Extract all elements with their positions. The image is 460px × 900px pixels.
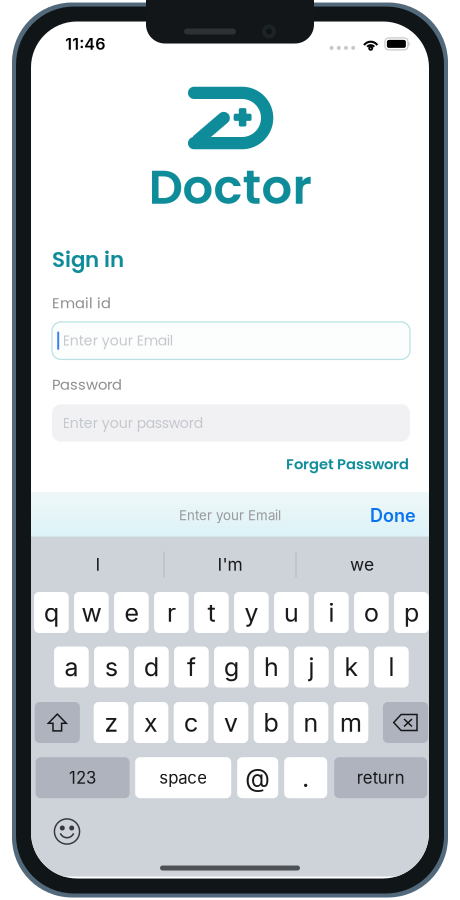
staticText: b <box>263 707 278 738</box>
button[interactable]: r <box>154 592 189 633</box>
button[interactable]: 123 <box>36 757 130 798</box>
button[interactable]: we <box>296 543 427 585</box>
button[interactable]: space <box>135 757 231 798</box>
staticText: Done <box>370 505 416 526</box>
staticText: 11:46 <box>65 34 105 54</box>
button[interactable]: s <box>94 646 129 687</box>
button[interactable]: Shift <box>35 702 80 743</box>
staticText: n <box>303 707 318 738</box>
staticText: I <box>95 554 100 575</box>
button[interactable]: u <box>274 592 309 633</box>
staticText: l <box>388 652 394 682</box>
button[interactable]: l <box>374 646 409 687</box>
button[interactable]: k <box>334 646 369 687</box>
staticText: y <box>244 597 258 628</box>
staticText: q <box>44 597 59 628</box>
staticText: space <box>159 768 207 788</box>
staticText: a <box>64 652 78 682</box>
staticText: d <box>144 652 159 682</box>
button[interactable]: Delete <box>383 702 428 743</box>
staticText: Email id <box>52 293 111 313</box>
button[interactable]: . <box>284 757 327 798</box>
staticText: we <box>350 554 374 575</box>
staticText: i <box>328 597 334 628</box>
button[interactable]: g <box>214 646 249 687</box>
button[interactable]: x <box>134 702 168 743</box>
button[interactable]: e <box>114 592 149 633</box>
staticText: h <box>264 652 279 682</box>
button[interactable]: z <box>94 702 128 743</box>
button[interactable]: j <box>294 646 329 687</box>
staticText: z <box>104 707 117 738</box>
button[interactable]: v <box>214 702 248 743</box>
staticText: j <box>308 652 314 682</box>
staticText: v <box>224 707 238 738</box>
button[interactable]: return <box>334 757 427 798</box>
staticText: return <box>357 768 405 788</box>
button[interactable]: w <box>74 592 109 633</box>
button[interactable]: p <box>394 592 429 633</box>
staticText: 123 <box>69 768 96 788</box>
button[interactable]: I'm <box>164 543 295 585</box>
staticText: Doctor <box>148 153 311 221</box>
staticText: r <box>167 597 176 628</box>
button[interactable]: f <box>174 646 209 687</box>
button[interactable]: y <box>234 592 269 633</box>
staticText: Enter your password <box>63 413 203 433</box>
staticText: f <box>187 652 196 682</box>
button[interactable]: h <box>254 646 289 687</box>
staticText: u <box>284 597 299 628</box>
staticText: m <box>340 707 362 738</box>
button[interactable]: o <box>354 592 389 633</box>
staticText: Enter your Email <box>179 507 281 523</box>
staticText: . <box>302 762 309 793</box>
staticText: x <box>144 707 158 738</box>
button[interactable]: t <box>194 592 229 633</box>
button[interactable]: b <box>254 702 288 743</box>
staticText: Sign in <box>52 245 124 274</box>
button[interactable]: I <box>32 543 163 585</box>
staticText: t <box>207 597 215 628</box>
staticText: c <box>184 707 198 738</box>
staticText: g <box>224 652 239 682</box>
button[interactable]: m <box>334 702 368 743</box>
staticText: e <box>124 597 138 628</box>
button[interactable]: i <box>314 592 349 633</box>
staticText: @ <box>245 762 270 793</box>
button[interactable]: q <box>34 592 69 633</box>
staticText: k <box>344 652 358 682</box>
button[interactable]: Forget Password <box>286 454 409 474</box>
staticText: o <box>364 597 379 628</box>
staticText: w <box>81 597 101 628</box>
button[interactable]: d <box>134 646 169 687</box>
staticText: I'm <box>217 554 242 575</box>
button[interactable]: @ <box>237 757 278 798</box>
button[interactable]: Done <box>370 505 416 526</box>
button[interactable]: c <box>174 702 208 743</box>
button[interactable]: a <box>54 646 89 687</box>
staticText: p <box>404 597 419 628</box>
button[interactable]: n <box>294 702 328 743</box>
button[interactable]: Emoji <box>53 818 80 845</box>
staticText: s <box>105 652 118 682</box>
staticText: Forget Password <box>286 454 409 474</box>
staticText: Password <box>52 374 122 395</box>
staticText: Enter your Email <box>63 331 173 350</box>
